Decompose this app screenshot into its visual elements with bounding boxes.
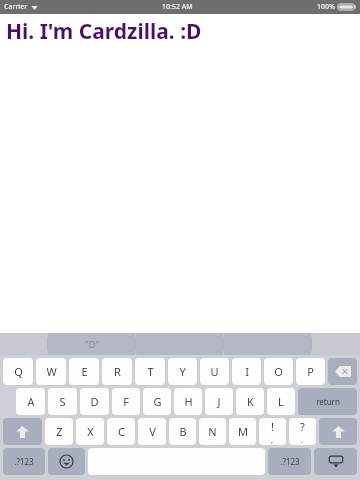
staticText: Hi. I'm Cardzilla. :D [6, 17, 202, 46]
button[interactable]: E [69, 358, 99, 385]
staticText: R [114, 364, 121, 379]
staticText: D [90, 394, 99, 409]
staticText: T [147, 364, 154, 379]
button[interactable]: J [205, 388, 233, 415]
staticText: C [118, 424, 125, 439]
button[interactable]: "D" [48, 333, 135, 355]
button[interactable]: .?123 [3, 448, 45, 475]
button[interactable]: .?123 [268, 448, 311, 475]
button[interactable]: Y [168, 358, 197, 385]
staticText: U [210, 364, 219, 379]
button[interactable]: U [200, 358, 229, 385]
button[interactable]: P [296, 358, 325, 385]
button[interactable]: Hide keyboard [314, 448, 357, 475]
button[interactable]: Z [45, 418, 73, 445]
button[interactable]: K [236, 388, 264, 415]
staticText: E [81, 364, 88, 379]
button[interactable]: R [102, 358, 132, 385]
staticText: L [278, 394, 284, 409]
staticText: 10:52 AM [162, 2, 193, 12]
staticText: .?123 [280, 456, 300, 467]
button[interactable]: N [199, 418, 226, 445]
staticText: .?123 [14, 456, 34, 467]
staticText: . [301, 434, 304, 445]
staticText: return [316, 396, 340, 407]
button[interactable]: I [232, 358, 261, 385]
button[interactable]: A [16, 388, 45, 415]
button[interactable]: L [267, 388, 295, 415]
staticText: 100% [317, 2, 335, 12]
staticText: ! [271, 419, 274, 434]
button[interactable]: B [169, 418, 196, 445]
staticText: V [149, 424, 156, 439]
staticText: F [123, 394, 129, 409]
staticText: P [307, 364, 314, 379]
staticText: , [271, 434, 274, 445]
staticText: W [46, 364, 57, 379]
staticText: Q [14, 364, 23, 379]
button[interactable]: Shift [319, 418, 357, 445]
button[interactable]: Emoji [48, 448, 85, 475]
staticText: Z [56, 424, 63, 439]
staticText: A [27, 394, 35, 409]
button[interactable]: Backspace [328, 358, 357, 385]
button[interactable]: C [107, 418, 135, 445]
staticText: ? [300, 419, 305, 434]
button[interactable]: return [298, 388, 357, 415]
staticText: J [217, 394, 221, 409]
button[interactable]: S [48, 388, 77, 415]
button[interactable]: ? [289, 418, 316, 445]
button[interactable]: V [138, 418, 166, 445]
button[interactable]: Shift [3, 418, 42, 445]
staticText: K [247, 394, 254, 409]
staticText: S [59, 394, 66, 409]
staticText: "D" [85, 338, 99, 350]
staticText: Y [179, 364, 186, 379]
staticText: B [179, 424, 187, 439]
button[interactable]: M [229, 418, 256, 445]
staticText: X [87, 424, 94, 439]
button[interactable]: D [80, 388, 109, 415]
button[interactable]: H [174, 388, 202, 415]
button[interactable]: X [76, 418, 104, 445]
button[interactable]: ! [259, 418, 286, 445]
staticText: G [153, 394, 162, 409]
staticText: I [245, 364, 249, 379]
staticText: N [208, 424, 217, 439]
staticText: Carrier [4, 2, 28, 12]
button[interactable]: F [112, 388, 140, 415]
button[interactable]: T [135, 358, 165, 385]
button[interactable]: G [143, 388, 171, 415]
button[interactable]: O [264, 358, 293, 385]
button[interactable]: Q [3, 358, 33, 385]
button[interactable]: W [36, 358, 66, 385]
staticText: O [274, 364, 283, 379]
staticText: M [238, 424, 248, 439]
staticText: H [184, 394, 193, 409]
